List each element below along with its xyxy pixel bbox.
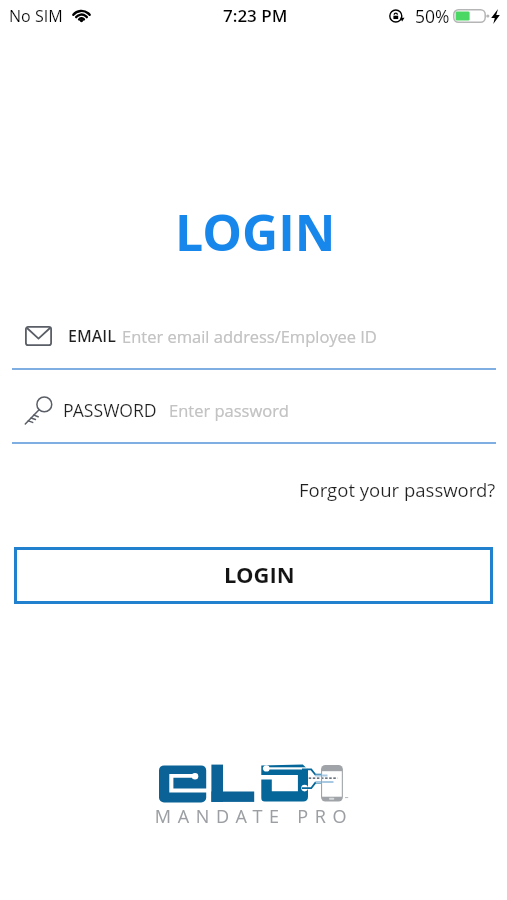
- staticText: No SIM: [9, 5, 63, 27]
- staticText: PASSWORD: [63, 398, 157, 422]
- staticText: Enter email address/Employee ID: [122, 325, 377, 347]
- staticText: 50%: [415, 4, 450, 28]
- staticText: EMAIL: [68, 325, 116, 347]
- staticText: Enter password: [169, 399, 289, 421]
- staticText: Forgot your password?: [299, 477, 496, 501]
- button[interactable]: LOGIN: [14, 547, 493, 604]
- button[interactable]: PASSWORD: [0, 388, 507, 432]
- staticText: LOGIN: [224, 559, 295, 589]
- staticText: LOGIN: [175, 198, 336, 258]
- button[interactable]: Forgot your password?: [285, 471, 507, 507]
- staticText: 7:23 PM: [223, 4, 288, 27]
- staticText: MANDATE PRO: [154, 804, 354, 829]
- button[interactable]: EMAIL: [0, 314, 507, 358]
